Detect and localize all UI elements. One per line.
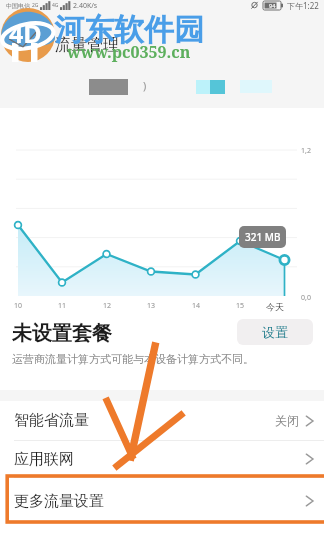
staticText: 流量管理 — [55, 35, 119, 55]
staticText: 15 — [236, 301, 245, 311]
staticText: 4G — [52, 2, 59, 9]
staticText: 应用联网 — [14, 450, 74, 469]
staticText: 中国电信 — [6, 2, 30, 10]
staticText: 0,0 — [301, 293, 311, 303]
staticText: 1,2 — [301, 146, 311, 156]
staticText: www.pc0359.cn — [67, 41, 191, 63]
staticText: 关闭 — [275, 413, 299, 428]
staticText: 设置 — [262, 324, 288, 340]
staticText: 94 — [269, 2, 276, 9]
staticText: 下午1:22 — [287, 0, 319, 11]
button[interactable]: 设置 — [237, 319, 313, 345]
staticText: 10 — [14, 301, 23, 311]
staticText: 河东软件园 — [54, 11, 204, 49]
staticText: 2G — [32, 2, 39, 9]
staticText: 14 — [192, 301, 201, 311]
button[interactable]: 更多流量设置 — [0, 478, 324, 524]
staticText: 今天 — [266, 301, 284, 312]
staticText: 11 — [58, 301, 67, 311]
staticText: 13 — [147, 301, 156, 311]
staticText: 智能省流量 — [14, 411, 89, 430]
staticText: 运营商流量计算方式可能与本设备计算方式不同。 — [12, 352, 254, 366]
staticText: 12 — [103, 301, 112, 311]
staticText: ) — [143, 78, 147, 93]
staticText: 更多流量设置 — [14, 492, 104, 511]
button[interactable]: 智能省流量 — [0, 401, 324, 440]
staticText: 321 MB — [245, 230, 281, 244]
staticText: 4D — [9, 16, 42, 50]
staticText: 未设置套餐 — [12, 321, 112, 346]
button[interactable]: 应用联网 — [0, 441, 324, 477]
staticText: 2.40K/s — [73, 1, 98, 11]
